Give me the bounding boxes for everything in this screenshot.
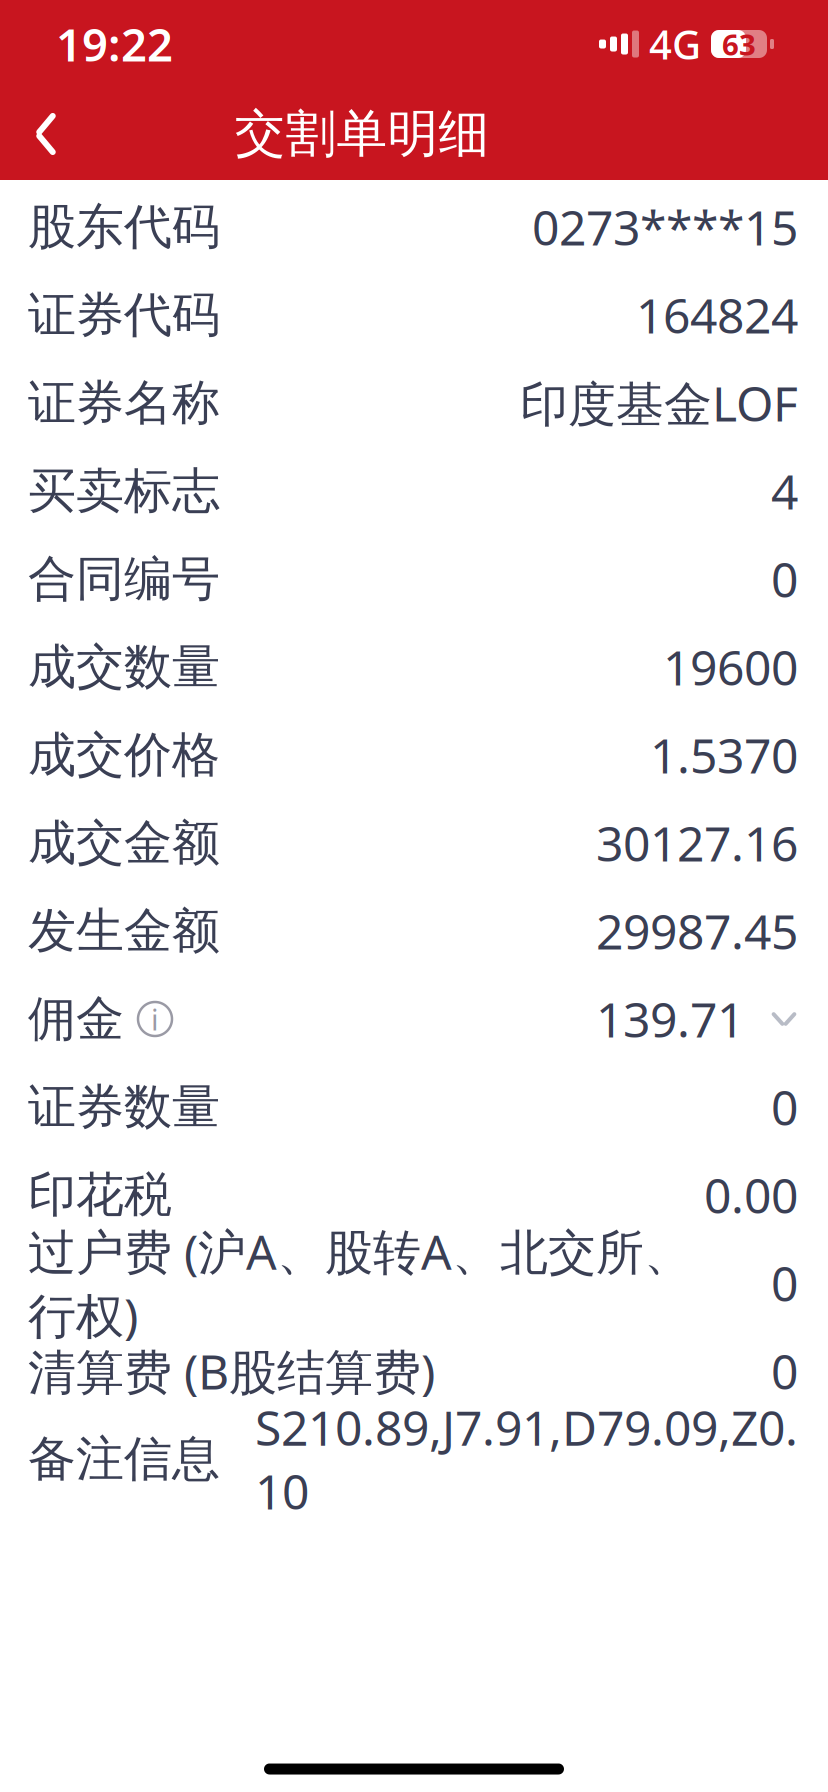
- staticText: 清算费 (B股结算费): [28, 1339, 435, 1403]
- button[interactable]: 成交金额: [0, 799, 828, 887]
- staticText: 29987.45: [596, 899, 798, 963]
- staticText: 印花税: [28, 1165, 172, 1224]
- button[interactable]: 清算费 (B股结算费): [0, 1327, 828, 1415]
- button[interactable]: 发生金额: [0, 887, 828, 975]
- staticText: 0: [771, 1339, 798, 1403]
- staticText: 过户费 (沪A、股转A、北交所、行权): [28, 1219, 692, 1347]
- staticText: 发生金额: [28, 901, 220, 960]
- button[interactable]: 成交数量: [0, 623, 828, 711]
- button[interactable]: 证券名称: [0, 359, 828, 447]
- staticText: 佣金: [28, 989, 124, 1048]
- staticText: 1.5370: [650, 723, 798, 787]
- staticText: 164824: [636, 283, 798, 347]
- staticText: 0.00: [704, 1163, 798, 1227]
- staticText: 成交价格: [28, 725, 220, 784]
- button[interactable]: 买卖标志: [0, 447, 828, 535]
- staticText: i: [151, 999, 159, 1038]
- button[interactable]: 过户费 (沪A、股转A、北交所、行权): [0, 1239, 828, 1327]
- staticText: 交割单明细: [234, 103, 489, 165]
- staticText: 0: [771, 1251, 798, 1315]
- staticText: 4G: [649, 17, 701, 70]
- button[interactable]: 备注信息: [0, 1415, 828, 1503]
- button[interactable]: 印花税: [0, 1151, 828, 1239]
- staticText: 19600: [663, 635, 798, 699]
- button[interactable]: 返回: [0, 88, 92, 180]
- staticText: 买卖标志: [28, 461, 220, 520]
- button[interactable]: 成交价格: [0, 711, 828, 799]
- staticText: 合同编号: [28, 549, 220, 608]
- staticText: 0: [771, 1075, 798, 1139]
- staticText: 证券名称: [28, 373, 220, 432]
- staticText: 30127.16: [596, 811, 798, 875]
- button[interactable]: 佣金: [0, 975, 828, 1063]
- staticText: 0: [771, 547, 798, 611]
- staticText: 63: [722, 24, 756, 63]
- staticText: S210.89,J7.91,D79.09,Z0.10: [255, 1395, 798, 1523]
- button[interactable]: 合同编号: [0, 535, 828, 623]
- staticText: 证券数量: [28, 1077, 220, 1136]
- staticText: 成交数量: [28, 637, 220, 696]
- staticText: 4: [771, 459, 798, 523]
- staticText: 成交金额: [28, 813, 220, 872]
- staticText: 证券代码: [28, 285, 220, 344]
- button[interactable]: 证券代码: [0, 271, 828, 359]
- staticText: 0273****15: [532, 195, 798, 259]
- staticText: 备注信息: [28, 1429, 220, 1488]
- button[interactable]: 证券数量: [0, 1063, 828, 1151]
- staticText: 股东代码: [28, 197, 220, 256]
- staticText: 19:22: [56, 14, 173, 74]
- staticText: 139.71: [596, 987, 744, 1051]
- staticText: 印度基金LOF: [520, 371, 798, 435]
- button[interactable]: 股东代码: [0, 183, 828, 271]
